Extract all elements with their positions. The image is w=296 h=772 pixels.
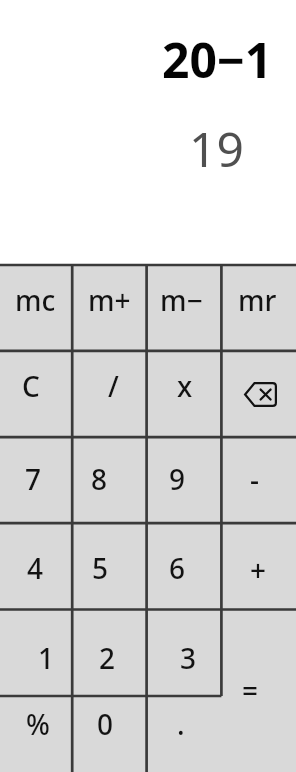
staticText: 7 (25, 460, 42, 498)
button[interactable]: Backspace (221, 351, 296, 437)
button[interactable]: + (221, 523, 296, 609)
button[interactable]: C (0, 351, 72, 437)
button[interactable]: mr (221, 265, 296, 351)
button[interactable]: mc (0, 265, 72, 351)
button[interactable]: 6 (147, 523, 222, 609)
button[interactable]: x (147, 351, 222, 437)
staticText: + (250, 551, 267, 589)
staticText: m+ (88, 281, 131, 319)
staticText: 3 (180, 639, 197, 677)
staticText: 1 (38, 639, 55, 677)
button[interactable]: 5 (72, 523, 146, 609)
button[interactable]: - (221, 437, 296, 523)
staticText: mr (238, 281, 277, 319)
staticText: 8 (91, 460, 108, 498)
button[interactable]: 2 (72, 610, 146, 697)
button[interactable]: % (0, 696, 72, 772)
button[interactable]: m− (147, 265, 222, 351)
staticText: = (242, 671, 259, 709)
staticText: 0 (97, 705, 114, 743)
button[interactable]: 0 (72, 696, 146, 772)
staticText: 2 (99, 639, 116, 677)
button[interactable]: 1 (0, 610, 72, 697)
staticText: 4 (27, 549, 44, 587)
button[interactable]: 9 (147, 437, 222, 523)
button[interactable]: 3 (147, 610, 222, 697)
button[interactable]: . (147, 696, 222, 772)
staticText: . (177, 705, 185, 743)
staticText: 20−1 (162, 27, 273, 92)
staticText: 5 (92, 549, 109, 587)
staticText: 6 (169, 549, 186, 587)
staticText: / (108, 367, 119, 405)
staticText: m− (160, 281, 203, 319)
button[interactable]: m+ (72, 265, 146, 351)
button[interactable]: / (72, 351, 146, 437)
staticText: x (177, 367, 193, 405)
button[interactable]: 7 (0, 437, 72, 523)
staticText: 9 (169, 460, 186, 498)
staticText: C (22, 367, 40, 405)
button[interactable]: 4 (0, 523, 72, 609)
staticText: mc (15, 281, 56, 319)
staticText: 19 (189, 116, 244, 181)
staticText: % (26, 705, 50, 743)
staticText: - (250, 460, 259, 498)
button[interactable]: = (221, 610, 296, 772)
button[interactable]: 8 (72, 437, 146, 523)
